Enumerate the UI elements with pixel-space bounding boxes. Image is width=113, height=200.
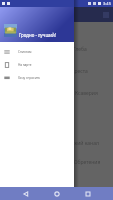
staticText: Хочу спросить: [18, 76, 41, 80]
button[interactable]: Церковь Бориса и Глеба: [0, 42, 113, 56]
staticText: Церковь Бориса и Глеба: [28, 46, 87, 53]
staticText: На карте: [18, 63, 32, 67]
staticText: Списком: [18, 50, 32, 54]
staticText: Церковь Воздвижения Креста: [15, 68, 88, 75]
button[interactable]: Списком: [0, 45, 74, 58]
staticText: Костёл Обретения: [56, 159, 101, 166]
staticText: Костёл Францишка Ксаверия: [27, 90, 98, 97]
button[interactable]: Recents: [82, 188, 93, 199]
button[interactable]: Back: [20, 188, 31, 199]
staticText: 3:45: [103, 1, 111, 6]
button[interactable]: Хочу спросить: [0, 71, 74, 84]
button[interactable]: На карте: [0, 58, 74, 71]
staticText: Гродно - лучший!: [19, 32, 56, 38]
staticText: Августовский канал: [51, 140, 99, 147]
button[interactable]: Августовский канал: [0, 136, 113, 150]
button[interactable]: Костёл Обретения: [0, 155, 113, 169]
button[interactable]: Церковь Воздвижения Креста: [0, 64, 113, 78]
button[interactable]: Home: [51, 188, 62, 199]
button[interactable]: Костёл Францишка Ксаверия: [0, 86, 113, 100]
